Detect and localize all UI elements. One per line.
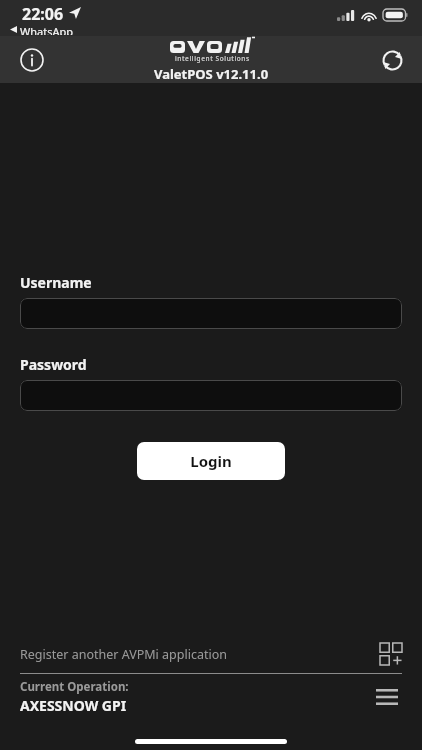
staticText: WhatsApp	[20, 24, 73, 35]
staticText: 22:06	[22, 3, 64, 25]
staticText: Login	[190, 451, 232, 471]
staticText: AXESSNOW GPI	[20, 696, 127, 715]
button[interactable]: Refresh	[374, 42, 410, 78]
button[interactable]: Current Operation:	[0, 674, 422, 720]
staticText: Current Operation:	[20, 679, 129, 695]
button[interactable]	[20, 380, 402, 411]
staticText: Username	[20, 273, 92, 292]
staticText: Password	[20, 355, 87, 374]
staticText: Register another AVPMi application	[20, 646, 380, 663]
button[interactable]: Login	[137, 442, 285, 480]
button[interactable]: Register another AVPMi application	[0, 635, 422, 673]
staticText: intelligent Solutions	[175, 54, 250, 63]
staticText: ValetPOS v12.11.0	[154, 65, 269, 83]
button[interactable]	[20, 298, 402, 329]
button[interactable]: Menu	[372, 682, 402, 712]
button[interactable]: Information	[14, 42, 50, 78]
